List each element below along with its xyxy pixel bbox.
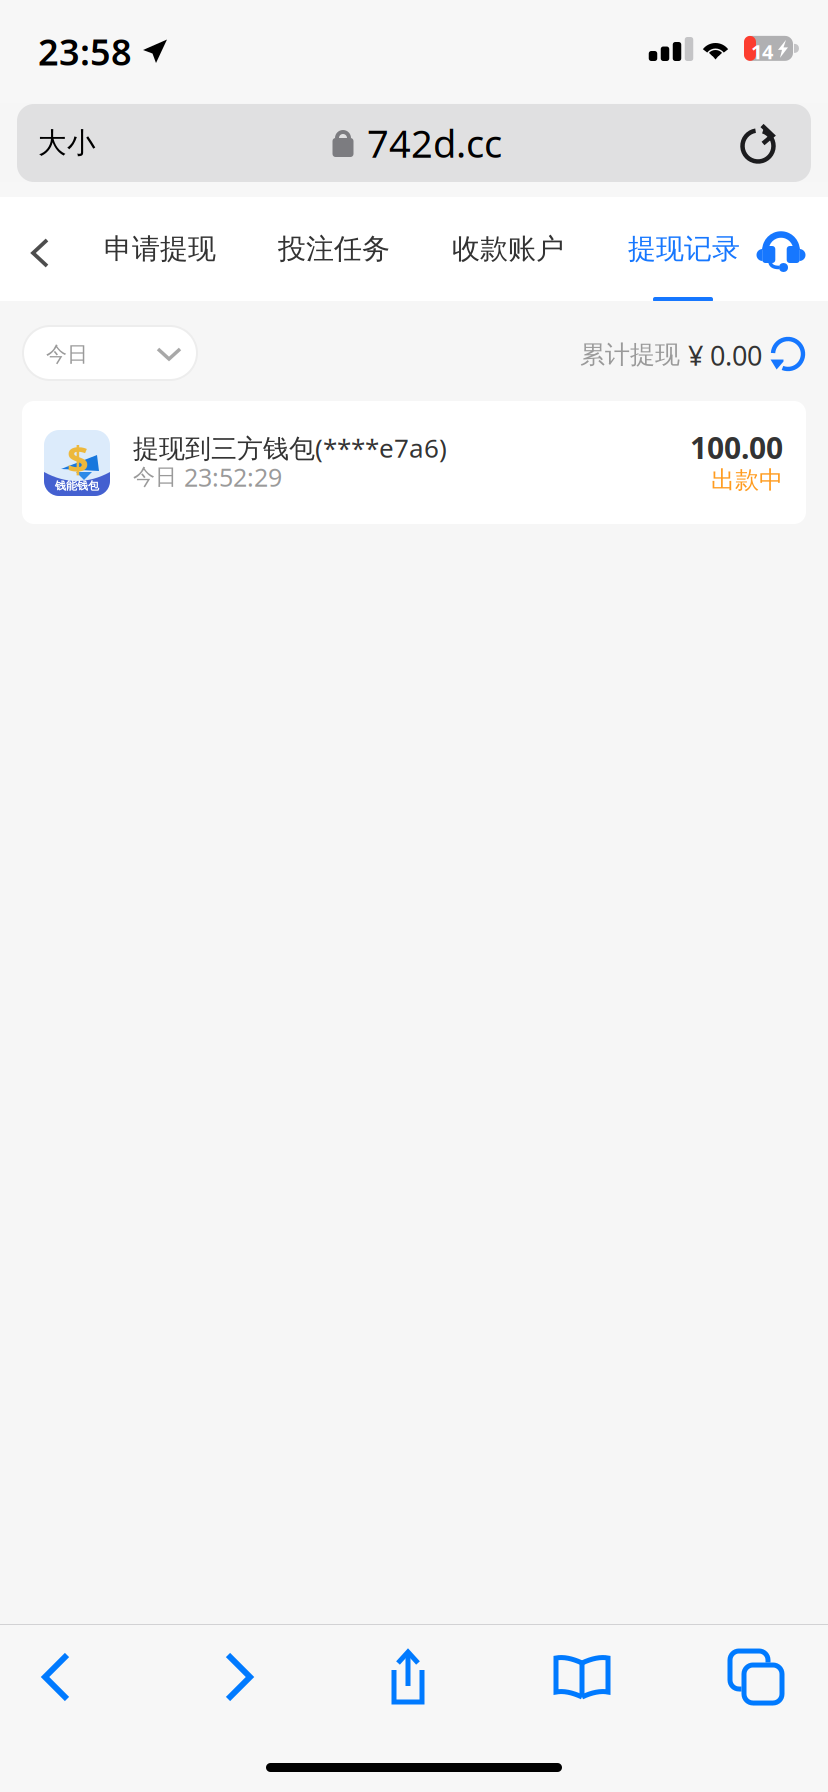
button[interactable]: 申请提现 <box>104 203 216 295</box>
staticText: 钱能钱包 <box>55 479 99 493</box>
button[interactable]: Back <box>3 1625 113 1729</box>
button[interactable]: 提现记录 <box>628 203 740 295</box>
button[interactable]: Forward <box>182 1625 292 1729</box>
button[interactable]: 今日 <box>23 326 197 380</box>
button[interactable]: Share <box>353 1625 463 1729</box>
staticText: 提现记录 <box>628 231 740 267</box>
button[interactable]: Reload page <box>711 104 811 182</box>
staticText: $ <box>67 433 89 485</box>
button[interactable]: 收款账户 <box>452 203 564 295</box>
button[interactable]: Customer support <box>750 203 812 295</box>
button[interactable]: 投注任务 <box>278 203 390 295</box>
staticText: 23:58 <box>38 27 132 76</box>
staticText: 14 <box>751 38 773 65</box>
staticText: 投注任务 <box>278 231 390 267</box>
staticText: 出款中 <box>711 465 783 495</box>
staticText: 收款账户 <box>452 231 564 267</box>
staticText: 大小 <box>38 125 96 161</box>
staticText: 23:52:29 <box>184 460 282 494</box>
staticText: 今日 <box>46 341 88 367</box>
staticText: 742d.cc <box>367 117 502 169</box>
button[interactable]: Bookmarks <box>527 1625 637 1729</box>
staticText: 100.00 <box>690 427 783 468</box>
button[interactable]: Tabs <box>701 1625 811 1729</box>
button[interactable]: Refresh total <box>767 334 807 374</box>
staticText: 今日 <box>133 463 177 491</box>
staticText: 累计提现 <box>580 339 680 370</box>
staticText: 提现到三方钱包(****e7a6) <box>133 430 447 465</box>
staticText: ¥ 0.00 <box>688 337 762 374</box>
button[interactable]: 大小 <box>17 104 158 182</box>
button[interactable]: $ <box>22 401 806 524</box>
button[interactable]: Back <box>3 208 79 300</box>
staticText: 申请提现 <box>104 231 216 267</box>
